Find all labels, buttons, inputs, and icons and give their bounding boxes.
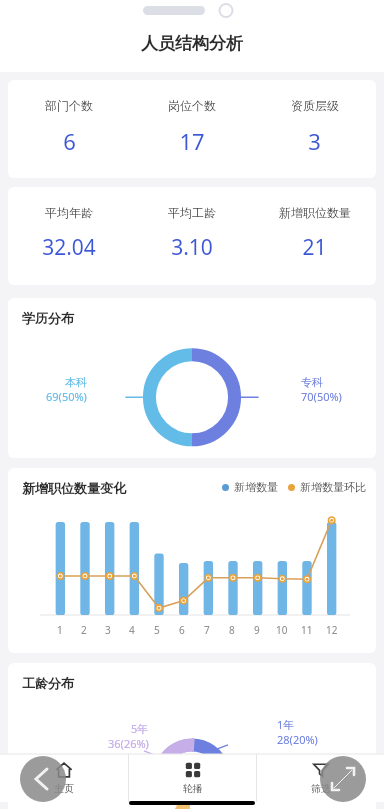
staticText: 32.04	[42, 233, 96, 262]
button[interactable]: 部门个数	[8, 80, 376, 178]
button[interactable]: 新增职位数量变化	[8, 468, 376, 653]
staticText: 6	[179, 623, 185, 637]
staticText: 部门个数	[45, 98, 93, 113]
button[interactable]: Expand	[320, 756, 366, 802]
staticText: 70(50%)	[301, 389, 342, 404]
staticText: 10	[276, 623, 288, 637]
staticText: 8	[229, 623, 235, 637]
staticText: 人员结构分析	[141, 33, 243, 54]
staticText: 1	[57, 623, 63, 637]
staticText: 5	[154, 623, 160, 637]
button[interactable]: 筛选	[257, 754, 384, 802]
staticText: 1年	[277, 717, 295, 732]
staticText: 11	[301, 623, 313, 637]
staticText: 3	[308, 126, 321, 156]
staticText: 6	[63, 126, 76, 156]
staticText: 21	[302, 233, 327, 262]
staticText: 平均工龄	[168, 205, 216, 220]
staticText: 岗位个数	[168, 98, 216, 113]
button[interactable]: 主页	[0, 754, 128, 802]
staticText: 3	[105, 623, 111, 637]
staticText: 资质层级	[291, 98, 339, 113]
staticText: 3.10	[171, 233, 213, 262]
staticText: 平均年龄	[45, 205, 93, 220]
staticText: 69(50%)	[46, 389, 87, 404]
staticText: 工龄分布	[22, 675, 74, 691]
staticText: 5年	[131, 721, 149, 736]
staticText: 4	[129, 623, 135, 637]
staticText: 新增数量环比	[300, 480, 366, 494]
staticText: 新增职位数量	[279, 205, 351, 220]
staticText: 专科	[301, 375, 323, 389]
staticText: 36(26%)	[108, 736, 149, 751]
staticText: 9	[254, 623, 260, 637]
staticText: 新增职位数量变化	[22, 480, 126, 496]
button[interactable]: 学历分布	[8, 298, 376, 458]
staticText: 学历分布	[22, 310, 74, 326]
staticText: 17	[179, 126, 205, 156]
staticText: 2	[81, 623, 87, 637]
staticText: 主页	[54, 782, 74, 795]
staticText: 2年	[308, 787, 326, 802]
button[interactable]: Back	[20, 756, 66, 802]
staticText: 新增数量	[234, 480, 278, 494]
staticText: 12	[326, 623, 338, 637]
staticText: 28(20%)	[277, 732, 318, 747]
staticText: 本科	[65, 375, 87, 389]
button[interactable]: 轮播	[129, 754, 256, 802]
button[interactable]: 平均年龄	[8, 187, 376, 285]
staticText: 轮播	[183, 782, 203, 795]
button[interactable]: 工龄分布	[8, 663, 376, 809]
staticText: 7	[204, 623, 210, 637]
staticText: 筛选	[311, 782, 331, 795]
